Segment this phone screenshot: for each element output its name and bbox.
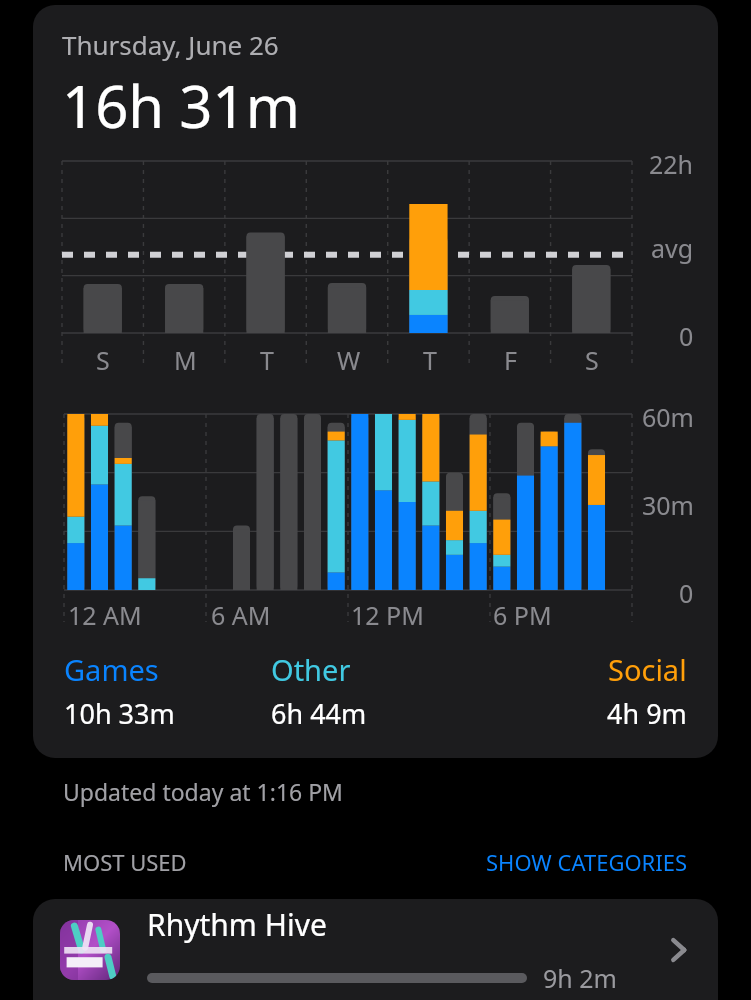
staticText: 12 AM <box>68 598 142 632</box>
staticText: Other <box>271 650 351 689</box>
staticText: T <box>423 343 437 377</box>
staticText: M <box>174 343 197 377</box>
staticText: S <box>585 343 599 377</box>
button[interactable]: Rhythm Hive icon <box>33 899 718 1000</box>
staticText: 30m <box>642 488 694 522</box>
staticText: 10h 33m <box>64 695 175 732</box>
button[interactable]: Games <box>64 650 271 732</box>
staticText: MOST USED <box>63 847 187 877</box>
staticText: 6h 44m <box>271 695 367 732</box>
staticText: 16h 31m <box>62 66 300 145</box>
staticText: 9h 2m <box>543 961 617 995</box>
other: Rhythm Hive icon <box>60 920 120 980</box>
button[interactable]: SHOW CATEGORIES <box>486 847 688 877</box>
staticText: Rhythm Hive <box>147 904 327 945</box>
staticText: 60m <box>642 400 694 434</box>
staticText: avg <box>651 231 694 265</box>
staticText: T <box>260 343 274 377</box>
staticText: F <box>504 343 517 377</box>
staticText: 12 PM <box>351 598 424 632</box>
staticText: 6 PM <box>493 598 552 632</box>
button[interactable]: Other <box>271 650 479 732</box>
staticText: 4h 9m <box>607 695 687 732</box>
staticText: W <box>337 343 361 377</box>
button[interactable]: Thursday, June 26 <box>33 5 718 758</box>
staticText: 0 <box>679 319 694 353</box>
button[interactable]: Social <box>479 650 687 732</box>
staticText: 22h <box>649 147 694 181</box>
staticText: Updated today at 1:16 PM <box>63 776 343 807</box>
staticText: SHOW CATEGORIES <box>486 847 688 877</box>
staticText: Social <box>608 650 687 689</box>
staticText: Thursday, June 26 <box>62 27 279 62</box>
button[interactable]: Open app details <box>656 928 700 972</box>
staticText: Games <box>64 650 159 689</box>
staticText: 6 AM <box>211 598 271 632</box>
staticText: S <box>96 343 110 377</box>
staticText: 0 <box>679 576 694 610</box>
